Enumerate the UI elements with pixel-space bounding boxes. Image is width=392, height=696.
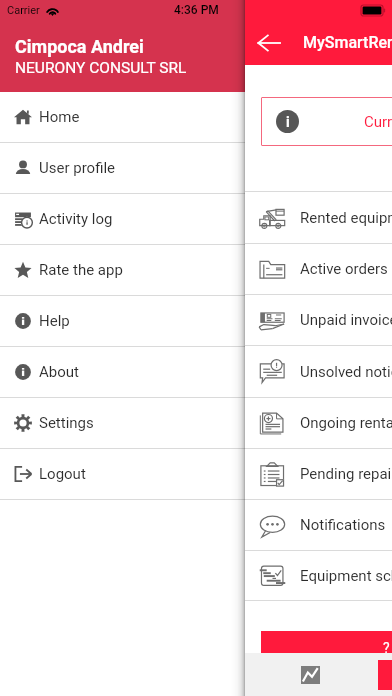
staticText: Pending repairs xyxy=(300,465,392,483)
staticText: ? Need more help? xyxy=(383,640,392,656)
staticText: Activity log xyxy=(39,210,113,228)
button[interactable]: About xyxy=(0,347,245,397)
staticText: Settings xyxy=(39,414,94,432)
staticText: Rented equipment xyxy=(300,209,392,227)
button[interactable]: i xyxy=(261,97,392,146)
staticText: Unpaid invoices xyxy=(300,311,392,329)
staticText: About xyxy=(39,363,79,381)
staticText: User profile xyxy=(39,159,116,177)
button[interactable]: Unsolved notices xyxy=(245,346,392,397)
staticText: Ongoing rentals xyxy=(300,414,392,432)
staticText: Help xyxy=(39,312,70,330)
staticText: Carrier xyxy=(7,4,40,17)
staticText: Cimpoca Andrei xyxy=(15,36,144,57)
button[interactable]: Rented equipment xyxy=(245,192,392,243)
staticText: Notifications xyxy=(300,516,386,534)
button[interactable]: Active orders xyxy=(245,244,392,294)
button[interactable]: Activity log xyxy=(0,194,245,244)
button[interactable]: Logout xyxy=(0,449,245,499)
staticText: Current situation report xyxy=(364,113,392,131)
staticText: Equipment schedule xyxy=(300,567,392,585)
button[interactable]: Home xyxy=(0,92,245,142)
button[interactable]: Back xyxy=(245,20,293,65)
staticText: 4:36 PM xyxy=(174,3,219,17)
button[interactable]: Settings xyxy=(0,398,245,448)
staticText: NEURONY CONSULT SRL xyxy=(15,59,187,77)
button[interactable]: Rate the app xyxy=(0,245,245,295)
button[interactable]: Notifications xyxy=(245,500,392,550)
button[interactable]: Pending repairs xyxy=(245,449,392,499)
staticText: MySmartRent xyxy=(303,33,392,52)
staticText: Logout xyxy=(39,465,86,483)
button[interactable]: ? Need more help? xyxy=(261,631,392,665)
staticText: i xyxy=(286,114,290,130)
button[interactable]: User profile xyxy=(0,143,245,193)
staticText: Home xyxy=(39,108,80,126)
button[interactable]: Help xyxy=(0,296,245,346)
button[interactable]: Statistics xyxy=(245,653,375,696)
staticText: Rate the app xyxy=(39,261,123,279)
staticText: Active orders xyxy=(300,260,388,278)
staticText: Unsolved notices xyxy=(300,363,392,381)
button[interactable]: Scan xyxy=(375,653,392,696)
button[interactable]: Equipment schedule xyxy=(245,551,392,600)
button[interactable]: Unpaid invoices xyxy=(245,295,392,345)
button[interactable]: Ongoing rentals xyxy=(245,398,392,448)
